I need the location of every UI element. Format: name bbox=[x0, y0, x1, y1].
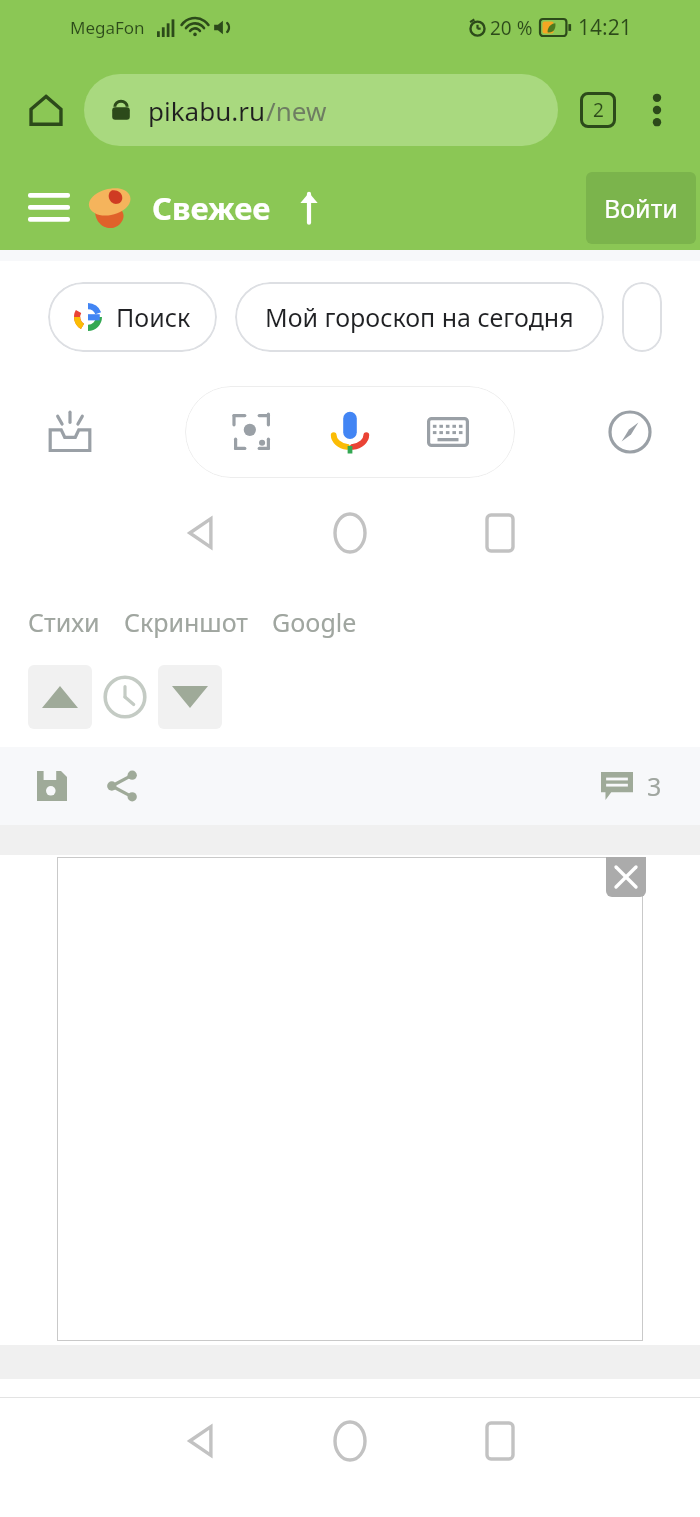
button[interactable]: Google Lens bbox=[221, 401, 283, 463]
staticText: Скриншот bbox=[124, 605, 248, 639]
button[interactable]: More suggestions bbox=[622, 282, 662, 352]
button[interactable]: Close ad bbox=[606, 857, 646, 897]
button[interactable]: Share bbox=[98, 762, 146, 810]
button[interactable]: Inbox bbox=[38, 400, 102, 464]
button[interactable]: Recent apps bbox=[425, 1398, 575, 1483]
button[interactable]: Войти bbox=[586, 172, 696, 244]
button[interactable]: Scroll to top bbox=[289, 188, 329, 228]
button[interactable]: Upvote bbox=[28, 665, 92, 729]
button[interactable]: Home bbox=[20, 84, 72, 136]
staticText: 14:21 bbox=[578, 13, 632, 42]
button[interactable]: Downvote bbox=[158, 665, 222, 729]
button[interactable]: Скриншот bbox=[124, 605, 272, 639]
button[interactable]: Recent apps bbox=[425, 491, 575, 575]
staticText: MegaFon bbox=[70, 16, 145, 39]
staticText: /new bbox=[266, 93, 327, 128]
staticText: Поиск bbox=[116, 300, 191, 334]
button[interactable]: Home bbox=[275, 1398, 425, 1483]
staticText: Свежее bbox=[152, 187, 271, 229]
button[interactable]: Мой гороскоп на сегодня bbox=[235, 282, 604, 352]
staticText: 20 % bbox=[490, 15, 533, 41]
button[interactable]: Back bbox=[125, 491, 275, 575]
staticText: Мой гороскоп на сегодня bbox=[265, 300, 574, 334]
button[interactable]: Voice search bbox=[319, 401, 381, 463]
button[interactable]: Tabs bbox=[572, 84, 624, 136]
button[interactable]: 3 bbox=[601, 769, 662, 803]
button[interactable]: Google bbox=[272, 605, 381, 639]
button[interactable]: pikabu.ru bbox=[84, 74, 558, 146]
staticText: Стихи bbox=[28, 605, 100, 639]
button[interactable]: Save bbox=[28, 762, 76, 810]
staticText: 2 bbox=[593, 97, 604, 123]
button[interactable]: Home bbox=[275, 491, 425, 575]
button[interactable]: Discover bbox=[598, 400, 662, 464]
button[interactable]: Стихи bbox=[28, 605, 124, 639]
button[interactable]: Back bbox=[125, 1398, 275, 1483]
button[interactable]: More options bbox=[634, 87, 680, 133]
staticText: Google bbox=[272, 605, 357, 639]
staticText: pikabu.ru bbox=[148, 93, 266, 128]
button[interactable]: Поиск bbox=[48, 282, 217, 352]
staticText: Войти bbox=[604, 191, 678, 225]
staticText: 3 bbox=[647, 769, 662, 803]
button[interactable]: Keyboard bbox=[417, 401, 479, 463]
button[interactable]: Menu bbox=[22, 181, 76, 235]
